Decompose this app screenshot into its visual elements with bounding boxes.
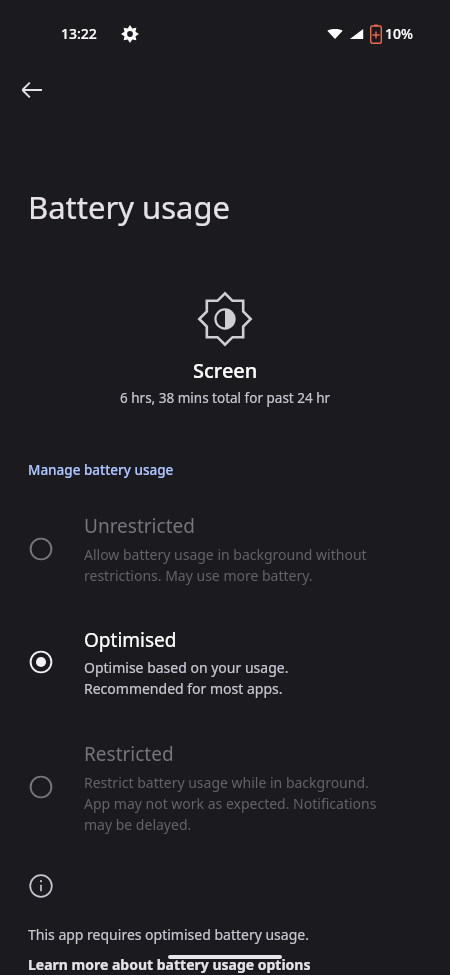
button[interactable]: Learn more about battery usage options xyxy=(28,955,311,974)
staticText: Manage battery usage xyxy=(28,461,174,479)
staticText: may be delayed. xyxy=(84,815,192,834)
button[interactable] xyxy=(0,734,450,828)
staticText: Recommended for most apps. xyxy=(84,679,283,698)
button[interactable] xyxy=(0,620,450,692)
staticText: Restricted xyxy=(84,741,174,767)
staticText: Optimise based on your usage. xyxy=(84,658,289,677)
staticText: Screen xyxy=(193,357,258,384)
staticText: App may not work as expected. Notificati… xyxy=(84,794,377,813)
staticText: Restrict battery usage while in backgrou… xyxy=(84,773,369,792)
staticText: Allow battery usage in background withou… xyxy=(84,545,367,564)
staticText: This app requires optimised battery usag… xyxy=(28,925,309,944)
staticText: 6 hrs, 38 mins total for past 24 hr xyxy=(120,389,331,407)
staticText: Optimised xyxy=(84,627,177,653)
staticText: 10% xyxy=(385,24,413,43)
staticText: restrictions. May use more battery. xyxy=(84,566,313,585)
staticText: Battery usage xyxy=(28,186,231,228)
button[interactable] xyxy=(0,506,450,578)
staticText: Unrestricted xyxy=(84,513,195,539)
staticText: 13:22 xyxy=(61,24,97,43)
button[interactable]: Back xyxy=(10,68,54,112)
other: Information xyxy=(29,874,53,898)
